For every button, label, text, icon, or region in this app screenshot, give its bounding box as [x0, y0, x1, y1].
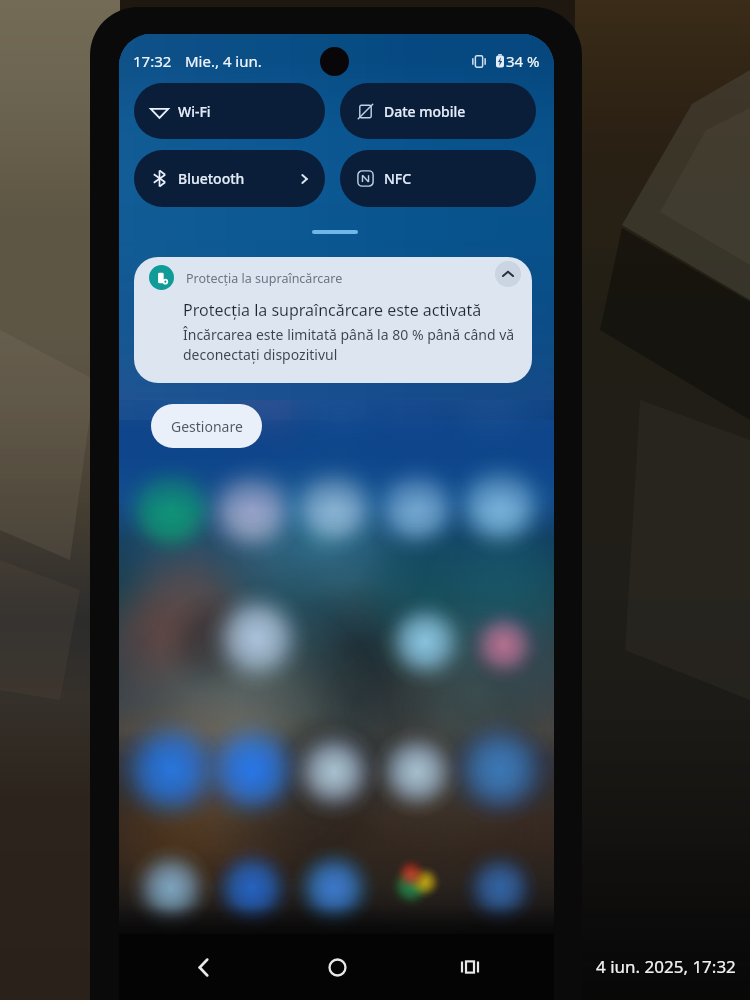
staticText: 4 iun. 2025, 17:32	[596, 955, 736, 978]
staticText: Wi-Fi	[178, 102, 211, 121]
staticText: Protecția la supraîncărcare	[186, 270, 343, 287]
button[interactable]: Back	[181, 945, 225, 989]
button[interactable]: Wi-Fi	[134, 83, 325, 139]
button[interactable]: Date mobile	[340, 83, 536, 139]
button[interactable]: Recents	[448, 945, 492, 989]
staticText: Bluetooth	[178, 169, 245, 188]
staticText: Protecția la supraîncărcare este activat…	[183, 299, 482, 321]
staticText: 34 %	[506, 51, 540, 71]
staticText: 17:32	[133, 51, 172, 71]
button[interactable]: Bluetooth	[134, 150, 325, 207]
button[interactable]: Home	[315, 945, 359, 989]
button[interactable]: NFC	[340, 150, 536, 207]
staticText: Date mobile	[384, 102, 466, 121]
button[interactable]: Protecția la supraîncărcare	[134, 257, 532, 383]
button[interactable]: Gestionare	[151, 404, 262, 448]
staticText: NFC	[384, 169, 412, 188]
staticText: Încărcarea este limitată până la 80 % pâ…	[183, 325, 515, 364]
staticText: Gestionare	[171, 417, 243, 436]
button[interactable]: Collapse	[495, 261, 521, 287]
staticText: Mie., 4 iun.	[185, 51, 262, 71]
